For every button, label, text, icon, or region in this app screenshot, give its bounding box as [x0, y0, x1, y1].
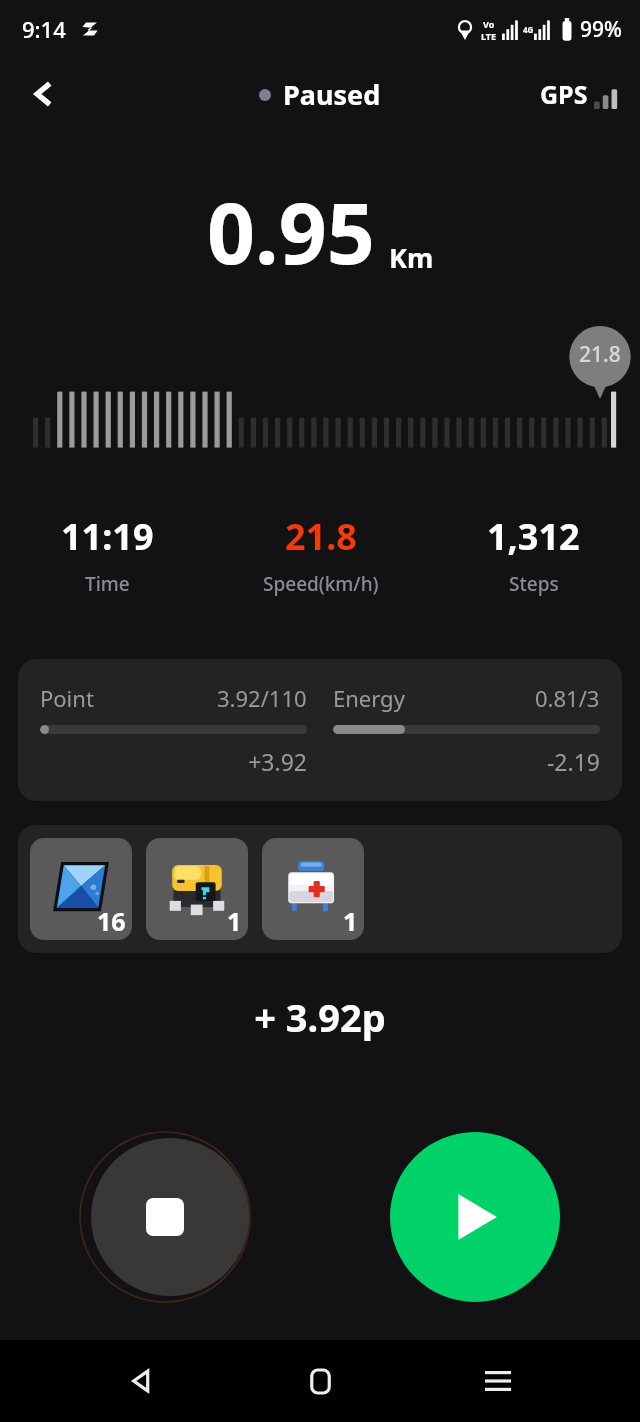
staticText: 16	[97, 904, 126, 938]
staticText: 0.95	[207, 174, 375, 288]
staticText: 21.8	[285, 512, 357, 561]
staticText: 99%	[580, 15, 622, 44]
button[interactable]: Item x1	[146, 838, 248, 940]
staticText: 3.92/110	[217, 683, 307, 713]
button[interactable]: Recent apps	[462, 1345, 534, 1417]
staticText: 0.81/3	[535, 683, 600, 713]
staticText: GPS	[540, 77, 588, 111]
button[interactable]: 1,312	[427, 512, 640, 597]
staticText: -2.19	[333, 746, 600, 777]
button[interactable]: 21.8	[214, 512, 427, 597]
button[interactable]: Resume	[390, 1132, 560, 1302]
staticText: Speed(km/h)	[263, 571, 379, 597]
staticText: + 3.92p	[0, 991, 640, 1043]
button[interactable]: Point	[18, 659, 622, 801]
staticText: Paused	[283, 76, 381, 113]
staticText: Vo	[483, 18, 495, 30]
staticText: 21.8	[579, 340, 621, 369]
staticText: 1	[227, 904, 242, 938]
button[interactable]: 11:19	[0, 512, 214, 597]
staticText: 1,312	[487, 512, 580, 561]
staticText: Km	[389, 239, 434, 276]
staticText: Point	[40, 683, 94, 713]
button[interactable]: Back	[106, 1345, 178, 1417]
staticText: 9:14	[22, 14, 66, 44]
button[interactable]: GPS signal	[540, 77, 620, 111]
staticText: +3.92	[40, 746, 307, 777]
staticText: Steps	[509, 571, 559, 597]
button[interactable]: Item x16	[30, 838, 132, 940]
button[interactable]: Home	[284, 1345, 356, 1417]
button[interactable]: Back	[18, 68, 70, 120]
staticText: LTE	[481, 30, 497, 42]
staticText: Energy	[333, 683, 405, 713]
staticText: 4G	[523, 24, 534, 35]
button[interactable]: Item x1	[262, 838, 364, 940]
staticText: 1	[343, 904, 358, 938]
staticText: Time	[85, 571, 130, 597]
button[interactable]: Stop	[80, 1132, 250, 1302]
staticText: 11:19	[61, 512, 154, 561]
